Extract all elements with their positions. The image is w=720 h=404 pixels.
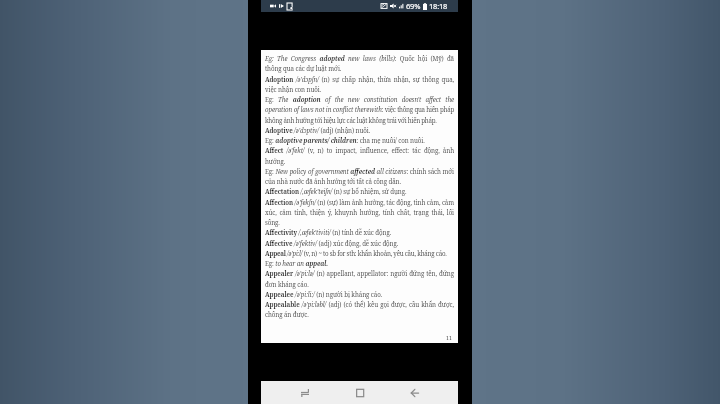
staticText: 69% [406, 1, 421, 11]
button[interactable]: Home [347, 381, 373, 404]
staticText: 11 [446, 334, 453, 341]
staticText: Eg: The Congress adopted new laws (bills… [265, 54, 454, 319]
staticText: 18:18 [429, 1, 448, 11]
button[interactable]: Back [402, 381, 428, 404]
button[interactable]: Recent apps [292, 381, 318, 404]
